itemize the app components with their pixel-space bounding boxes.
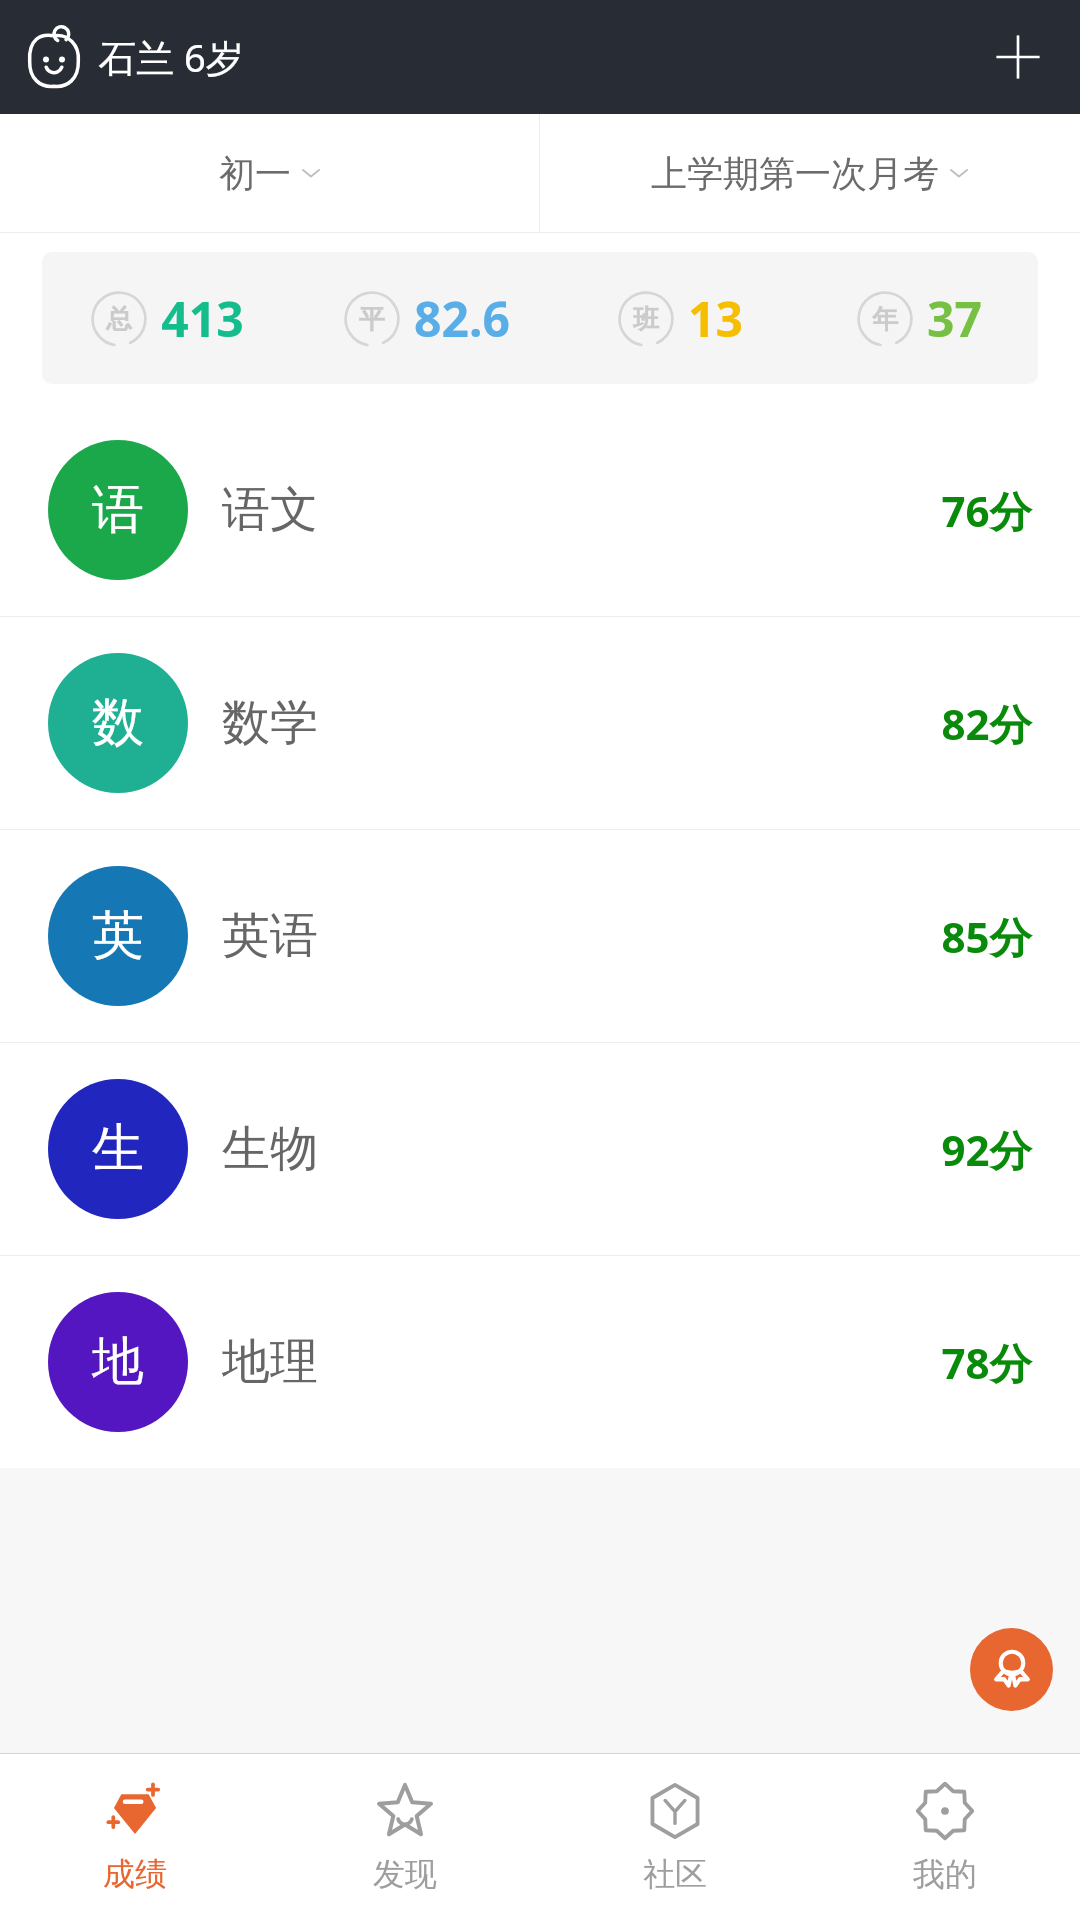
button[interactable]: 数 bbox=[0, 617, 1080, 829]
staticText: 初一 bbox=[219, 151, 291, 196]
staticText: 数学 bbox=[222, 693, 318, 753]
button[interactable]: 发现 bbox=[270, 1754, 540, 1920]
staticText: 上学期第一次月考 bbox=[651, 151, 939, 196]
staticText: 我的 bbox=[913, 1854, 977, 1894]
staticText: 数 bbox=[92, 690, 144, 756]
staticText: 总 bbox=[106, 303, 132, 336]
button[interactable]: 上学期第一次月考 bbox=[540, 114, 1080, 232]
staticText: 13 bbox=[688, 286, 743, 351]
button[interactable]: 社区 bbox=[540, 1754, 810, 1920]
staticText: 生物 bbox=[222, 1119, 318, 1179]
button[interactable]: 英 bbox=[0, 830, 1080, 1042]
staticText: 石兰 6岁 bbox=[98, 31, 244, 83]
button[interactable]: 生 bbox=[0, 1043, 1080, 1255]
button[interactable]: 成绩 bbox=[0, 1754, 270, 1920]
button[interactable]: 我的 bbox=[810, 1754, 1080, 1920]
staticText: 英语 bbox=[222, 906, 318, 966]
staticText: 82分 bbox=[941, 695, 1032, 752]
staticText: 语 bbox=[92, 477, 144, 543]
staticText: 平 bbox=[359, 303, 385, 336]
staticText: 成绩 bbox=[103, 1854, 167, 1894]
staticText: 语文 bbox=[222, 480, 318, 540]
button[interactable]: 添加 bbox=[982, 21, 1054, 93]
button[interactable]: 排名 bbox=[970, 1628, 1053, 1711]
button[interactable]: 初一 bbox=[0, 114, 539, 232]
staticText: 92分 bbox=[941, 1121, 1032, 1178]
staticText: 78分 bbox=[941, 1334, 1032, 1391]
button[interactable]: 语 bbox=[0, 404, 1080, 616]
staticText: 地 bbox=[92, 1329, 144, 1395]
staticText: 地理 bbox=[222, 1332, 318, 1392]
staticText: 社区 bbox=[643, 1854, 707, 1894]
button[interactable]: 石兰 6岁 bbox=[22, 25, 244, 89]
staticText: 英 bbox=[92, 903, 144, 969]
button[interactable]: 总 bbox=[42, 252, 1038, 384]
staticText: 生 bbox=[92, 1116, 144, 1182]
staticText: 85分 bbox=[941, 908, 1032, 965]
staticText: 82.6 bbox=[414, 286, 510, 351]
button[interactable]: 地 bbox=[0, 1256, 1080, 1468]
staticText: 37 bbox=[927, 286, 982, 351]
staticText: 年 bbox=[872, 303, 898, 336]
staticText: 76分 bbox=[941, 482, 1032, 539]
staticText: 发现 bbox=[373, 1854, 437, 1894]
staticText: 413 bbox=[161, 286, 244, 351]
staticText: 班 bbox=[633, 303, 659, 336]
